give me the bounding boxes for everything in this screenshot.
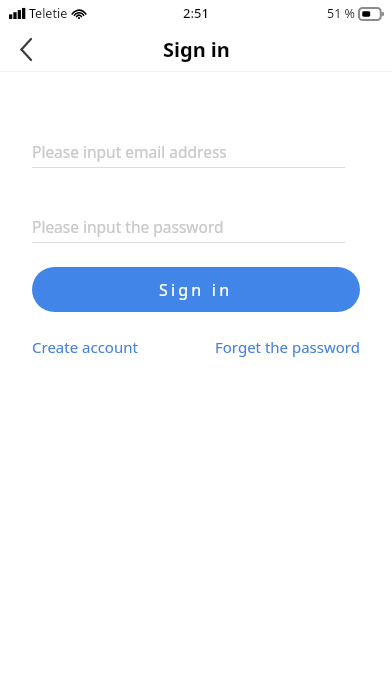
staticText: Please input the password [32,216,224,237]
staticText: Sign in [159,279,233,301]
staticText: 2:51 [183,4,209,22]
staticText: 51 % [327,5,355,22]
button[interactable]: Forget the password [215,333,360,361]
staticText: Sign in [163,36,230,63]
button[interactable]: Create account [32,333,138,361]
staticText: Please input email address [32,141,227,162]
button[interactable]: Sign in [32,267,360,312]
staticText: Teletie [29,5,68,22]
button[interactable]: Back [6,29,46,69]
button[interactable]: Please input email address [32,136,345,168]
button[interactable]: Please input the password [32,211,345,243]
staticText: Forget the password [215,337,360,357]
staticText: Create account [32,337,138,357]
